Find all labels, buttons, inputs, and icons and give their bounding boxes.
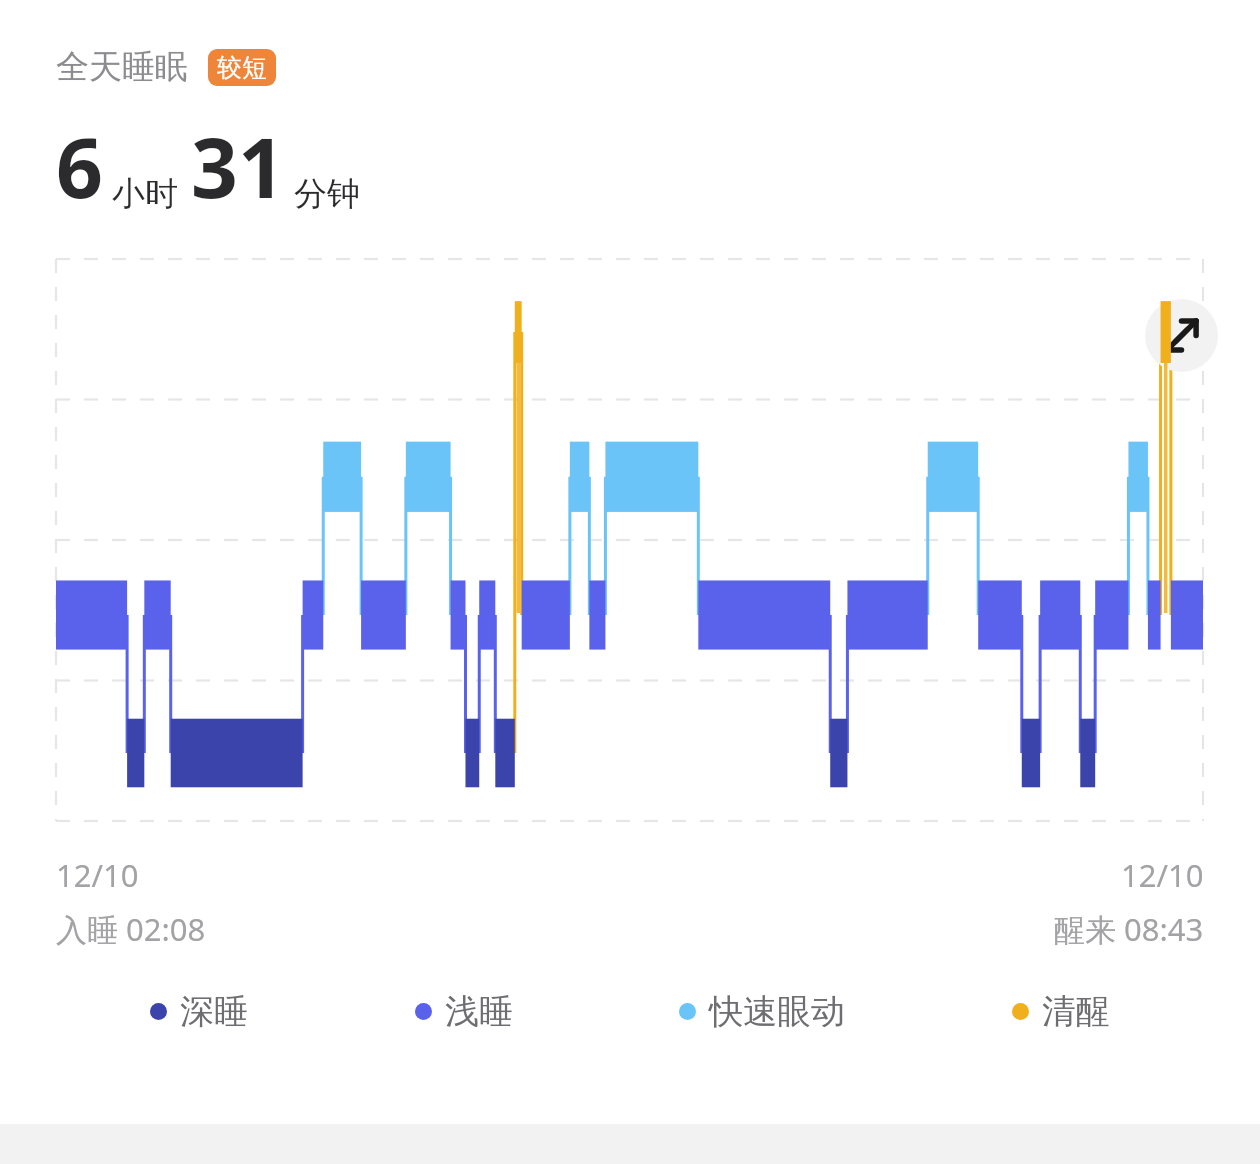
button[interactable]: 全天睡眠 xyxy=(56,46,276,88)
staticText: 小时 xyxy=(112,173,178,215)
staticText: 12/10 xyxy=(56,854,139,896)
staticText: 深睡 xyxy=(180,990,248,1033)
staticText: 清醒 xyxy=(1042,990,1110,1033)
staticText: 6 xyxy=(56,110,103,222)
staticText: 入睡 02:08 xyxy=(56,908,206,950)
button[interactable]: 浅睡 xyxy=(415,990,513,1033)
staticText: 醒来 08:43 xyxy=(1054,908,1204,950)
staticText: 31 xyxy=(191,110,285,222)
button[interactable]: 快速眼动 xyxy=(679,990,845,1033)
staticText: 12/10 xyxy=(1121,854,1204,896)
staticText: 快速眼动 xyxy=(709,990,845,1033)
staticText: 分钟 xyxy=(294,173,360,215)
staticText: 浅睡 xyxy=(445,990,513,1033)
button[interactable]: 深睡 xyxy=(150,990,248,1033)
button[interactable]: Expand chart xyxy=(1145,299,1218,372)
staticText: 较短 xyxy=(217,52,267,83)
staticText: 全天睡眠 xyxy=(56,46,188,88)
button[interactable]: 清醒 xyxy=(1012,990,1110,1033)
